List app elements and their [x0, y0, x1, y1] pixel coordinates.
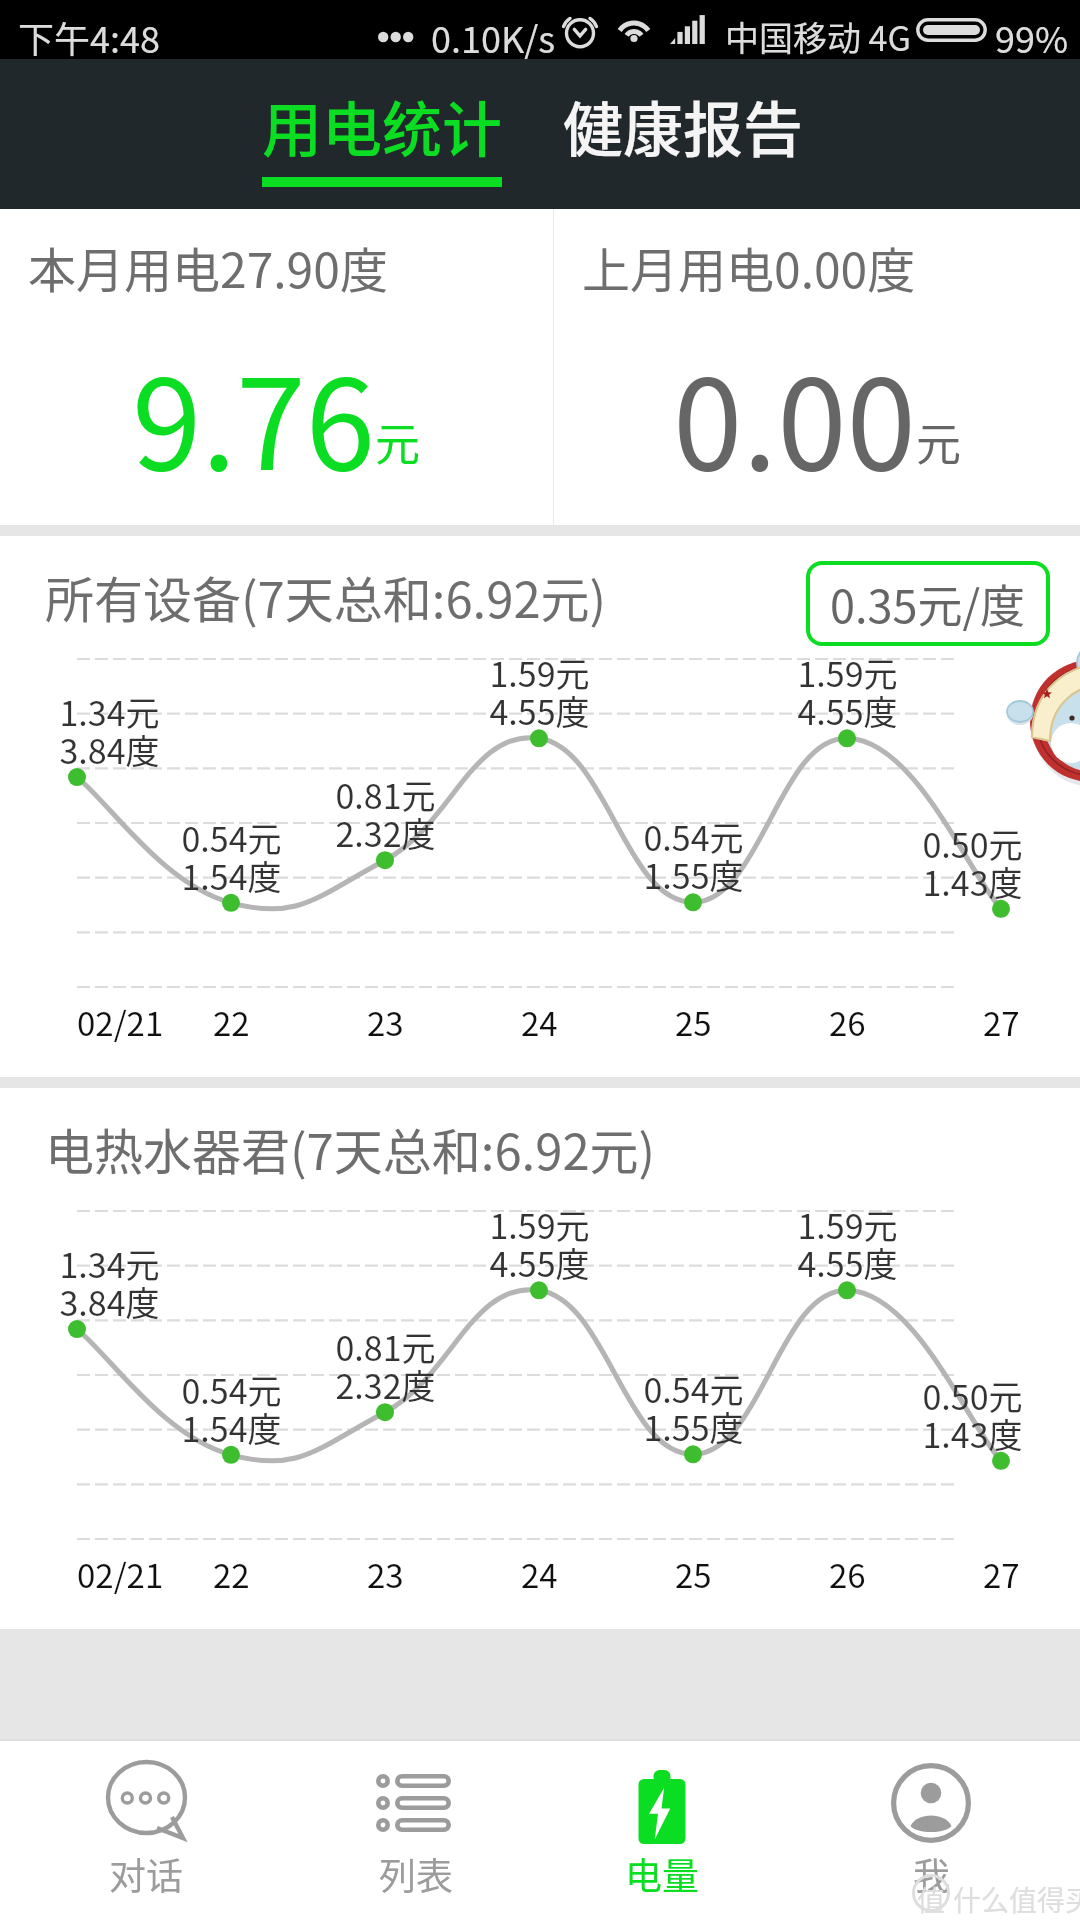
staticText: 26	[829, 1550, 866, 1598]
staticText: 02/21	[77, 1550, 164, 1598]
staticText: 22	[213, 1550, 250, 1598]
staticText: 9.76	[132, 325, 375, 506]
button[interactable]: 用电统计	[252, 59, 512, 209]
staticText: 1.59元 4.55度	[797, 1200, 898, 1287]
staticText: 24	[521, 998, 558, 1046]
staticText: 0.35元/度	[830, 571, 1026, 636]
staticText: 0.81元 2.32度	[335, 1322, 436, 1409]
button[interactable]: 列表	[296, 1739, 536, 1920]
staticText: 0.50元 1.43度	[922, 1371, 1023, 1458]
staticText: 1.59元 4.55度	[489, 648, 590, 735]
button[interactable]: 电量	[542, 1739, 782, 1920]
staticText: 0.54元 1.55度	[643, 1364, 744, 1451]
button[interactable]: 我	[811, 1739, 1051, 1920]
staticText: 1.59元 4.55度	[797, 648, 898, 735]
staticText: 25	[675, 1550, 712, 1598]
staticText: 0.54元 1.55度	[643, 812, 744, 899]
button[interactable]: 0.35元/度	[806, 561, 1050, 646]
staticText: 中国移动 4G	[725, 12, 911, 61]
staticText: 1.59元 4.55度	[489, 1200, 590, 1287]
staticText: 1.34元 3.84度	[59, 687, 160, 774]
staticText: 值	[917, 1879, 946, 1920]
staticText: 0.10K/s	[431, 11, 556, 63]
staticText: 27	[983, 1550, 1020, 1598]
staticText: 23	[367, 1550, 404, 1598]
staticText: 24	[521, 1550, 558, 1598]
staticText: 所有设备(7天总和:6.92元)	[45, 561, 607, 632]
staticText: 下午4:48	[18, 11, 160, 63]
staticText: 本月用电27.90度	[28, 232, 388, 302]
staticText: 元	[916, 409, 962, 474]
staticText: 健康报告	[563, 82, 803, 169]
staticText: 电热水器君(7天总和:6.92元)	[45, 1113, 656, 1184]
staticText: 99%	[995, 11, 1069, 63]
button[interactable]: 健康报告	[553, 59, 823, 209]
staticText: 1.34元 3.84度	[59, 1239, 160, 1326]
staticText: 0.81元 2.32度	[335, 770, 436, 857]
staticText: 27	[983, 998, 1020, 1046]
staticText: 我	[913, 1847, 950, 1901]
staticText: 26	[829, 998, 866, 1046]
staticText: 列表	[379, 1847, 453, 1901]
staticText: 23	[367, 998, 404, 1046]
button[interactable]: 本月用电27.90度	[0, 209, 553, 525]
staticText: 0.54元 1.54度	[181, 813, 282, 900]
button[interactable]: 上月用电0.00度	[554, 209, 1080, 525]
staticText: 0.54元 1.54度	[181, 1365, 282, 1452]
staticText: 0.50元 1.43度	[922, 819, 1023, 906]
staticText: 0.00	[673, 325, 916, 506]
staticText: 22	[213, 998, 250, 1046]
staticText: 电量	[625, 1847, 699, 1901]
button[interactable]: 对话	[26, 1739, 266, 1920]
staticText: 25	[675, 998, 712, 1046]
staticText: 什么值得买	[953, 1879, 1080, 1920]
staticText: 对话	[109, 1847, 183, 1901]
staticText: 02/21	[77, 998, 164, 1046]
staticText: 上月用电0.00度	[582, 232, 916, 302]
staticText: 元	[375, 409, 421, 474]
staticText: 用电统计	[262, 82, 502, 169]
